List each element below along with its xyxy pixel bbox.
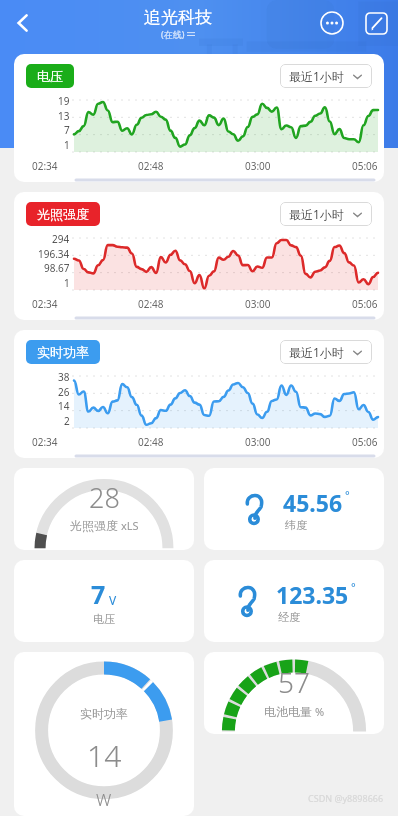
staticText: 2	[64, 414, 70, 428]
staticText: CSDN @y8898666	[308, 792, 384, 804]
button[interactable]: 实时功率	[26, 340, 100, 364]
staticText: 实时功率	[80, 706, 128, 721]
staticText: 1	[64, 138, 70, 152]
button[interactable]: Edit	[354, 1, 398, 45]
staticText: 02:34	[32, 159, 58, 173]
staticText: 纬度	[285, 518, 307, 532]
staticText: 38	[58, 370, 70, 384]
staticText: °	[351, 579, 356, 594]
button[interactable]: Unknown value	[204, 560, 384, 642]
staticText: 最近1小时	[289, 344, 344, 360]
staticText: 26	[58, 385, 70, 399]
staticText: 最近1小时	[289, 206, 344, 222]
button[interactable]: 电压	[14, 54, 384, 182]
staticText: W	[96, 788, 112, 811]
button[interactable]: 7	[14, 560, 194, 642]
staticText: °	[345, 487, 350, 502]
staticText: 7	[64, 123, 70, 137]
staticText: 光照强度	[37, 206, 89, 222]
button[interactable]: 光照强度	[26, 202, 100, 226]
staticText: 45.56	[283, 487, 343, 518]
staticText: %	[315, 704, 325, 719]
button[interactable]: 最近1小时	[280, 202, 372, 226]
staticText: (在线)	[161, 28, 185, 40]
button[interactable]: 光照强度	[14, 192, 384, 320]
staticText: 05:06	[352, 435, 378, 449]
button[interactable]: 实时功率	[14, 652, 194, 816]
button[interactable]: Back	[0, 0, 46, 46]
staticText: 123.35	[276, 579, 349, 610]
staticText: 02:48	[138, 435, 164, 449]
button[interactable]: More options	[310, 1, 354, 45]
staticText: 02:48	[138, 159, 164, 173]
staticText: 02:34	[32, 435, 58, 449]
staticText: 196.34	[38, 247, 70, 261]
other: Unknown value	[232, 584, 266, 618]
staticText: 294	[52, 232, 70, 246]
button[interactable]: 57	[204, 652, 384, 734]
staticText: 追光科技	[144, 7, 212, 28]
staticText: V	[109, 592, 117, 608]
staticText: 03:00	[245, 159, 271, 173]
staticText: 最近1小时	[289, 68, 344, 84]
staticText: 19	[58, 94, 70, 108]
other: Unknown value	[239, 492, 273, 526]
staticText: 14	[87, 735, 122, 776]
staticText: 7	[91, 577, 106, 611]
button[interactable]: 电压	[26, 64, 74, 88]
button[interactable]: 实时功率	[14, 330, 384, 458]
button[interactable]: 28	[14, 468, 194, 550]
staticText: 实时功率	[37, 344, 89, 360]
staticText: xLS	[121, 518, 139, 533]
button[interactable]: Unknown value	[204, 468, 384, 550]
staticText: 1	[64, 276, 70, 290]
staticText: 02:48	[138, 297, 164, 311]
button[interactable]: 最近1小时	[280, 64, 372, 88]
staticText: 02:34	[32, 297, 58, 311]
staticText: 电池电量	[264, 704, 312, 719]
staticText: 13	[58, 109, 70, 123]
staticText: 03:00	[245, 435, 271, 449]
staticText: 光照强度	[70, 518, 118, 533]
button[interactable]: 最近1小时	[280, 340, 372, 364]
staticText: 98.67	[44, 261, 70, 275]
staticText: 05:06	[352, 297, 378, 311]
staticText: 14	[58, 399, 70, 413]
staticText: 03:00	[245, 297, 271, 311]
staticText: 05:06	[352, 159, 378, 173]
staticText: 经度	[278, 610, 300, 624]
staticText: 28	[89, 479, 120, 516]
staticText: 57	[278, 663, 310, 701]
staticText: 电压	[37, 68, 63, 84]
staticText: 电压	[93, 612, 115, 626]
